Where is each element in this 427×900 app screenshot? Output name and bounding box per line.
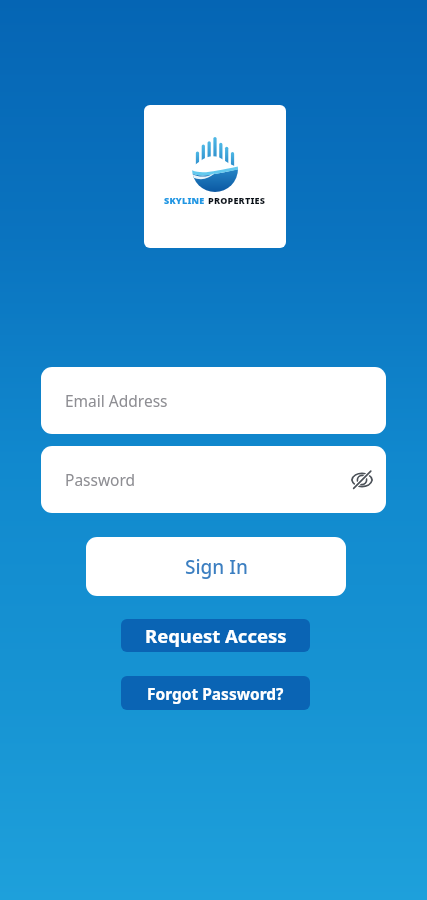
staticText: Sign In — [185, 554, 248, 580]
staticText: Password — [65, 469, 136, 490]
staticText: Forgot Password? — [147, 683, 284, 704]
button[interactable]: Email Address — [41, 367, 386, 434]
button[interactable]: Password — [41, 446, 386, 513]
staticText: PROPERTIES — [208, 194, 266, 206]
button[interactable]: Forgot Password? — [121, 676, 310, 710]
button[interactable]: Request Access — [121, 619, 310, 652]
staticText: Email Address — [65, 390, 168, 411]
staticText: SKYLINE — [164, 194, 205, 206]
button[interactable]: Sign In — [86, 537, 346, 596]
button[interactable]: Show password — [342, 460, 382, 500]
staticText: Request Access — [145, 623, 287, 648]
